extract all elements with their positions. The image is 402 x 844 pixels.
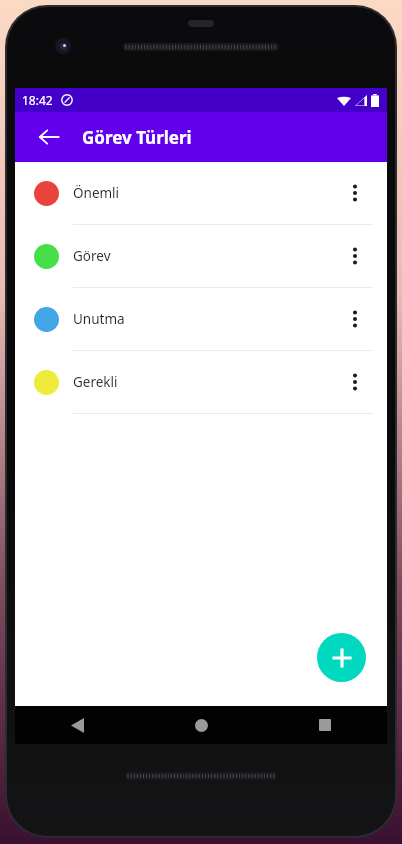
button[interactable]: Home bbox=[139, 706, 263, 744]
button[interactable]: Add bbox=[317, 633, 366, 682]
button[interactable]: Gerekli bbox=[15, 351, 387, 414]
button[interactable]: More options bbox=[335, 173, 375, 213]
button[interactable]: Unutma bbox=[15, 288, 387, 351]
button[interactable]: Back bbox=[29, 117, 69, 157]
button[interactable]: Görev bbox=[15, 225, 387, 288]
staticText: Gerekli bbox=[73, 373, 335, 391]
staticText: 18:42 bbox=[22, 92, 53, 108]
button[interactable]: More options bbox=[335, 236, 375, 276]
button[interactable]: Back bbox=[15, 706, 139, 744]
button[interactable]: Önemli bbox=[15, 162, 387, 225]
staticText: Görev bbox=[73, 247, 335, 265]
button[interactable]: Recent apps bbox=[263, 706, 387, 744]
button[interactable]: More options bbox=[335, 299, 375, 339]
staticText: Görev Türleri bbox=[82, 126, 192, 149]
staticText: Unutma bbox=[73, 310, 335, 328]
button[interactable]: More options bbox=[335, 362, 375, 402]
staticText: Önemli bbox=[73, 184, 335, 202]
